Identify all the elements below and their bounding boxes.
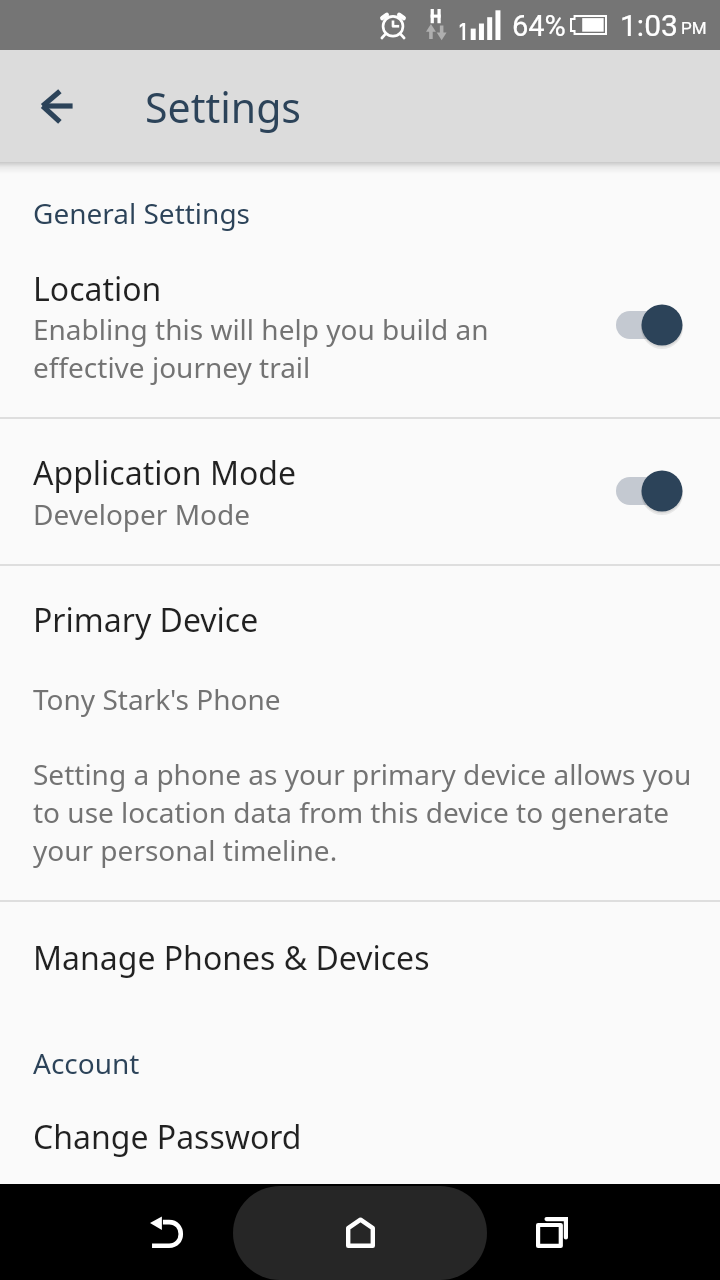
staticText: 64% xyxy=(512,9,566,43)
button[interactable]: Change Password xyxy=(0,1095,720,1184)
staticText: Change Password xyxy=(33,1115,302,1159)
button[interactable]: Application Mode xyxy=(0,419,720,564)
button[interactable]: Manage Phones & Devices xyxy=(0,902,720,1012)
button[interactable]: Toggle xyxy=(616,293,704,357)
button[interactable]: Toggle xyxy=(616,459,704,523)
button[interactable]: Primary Device xyxy=(0,566,720,900)
staticText: General Settings xyxy=(33,194,251,232)
staticText: Primary Device xyxy=(33,598,259,642)
staticText: Setting a phone as your primary device a… xyxy=(33,755,692,869)
button[interactable]: Back xyxy=(16,66,96,146)
staticText: Application Mode xyxy=(33,451,297,495)
staticText: Location xyxy=(33,267,162,311)
staticText: 1:03 xyxy=(620,8,678,43)
button[interactable]: Back xyxy=(119,1184,215,1280)
staticText: Enabling this will help you build an eff… xyxy=(33,310,489,386)
staticText: Developer Mode xyxy=(33,495,251,533)
button[interactable]: Location xyxy=(0,162,720,416)
staticText: PM xyxy=(681,18,707,38)
button[interactable]: Home xyxy=(312,1184,408,1280)
staticText: Settings xyxy=(145,79,302,135)
staticText: Manage Phones & Devices xyxy=(33,936,430,980)
staticText: Tony Stark's Phone xyxy=(33,680,281,718)
button[interactable]: Recent apps xyxy=(504,1184,600,1280)
staticText: Account xyxy=(33,1044,140,1082)
